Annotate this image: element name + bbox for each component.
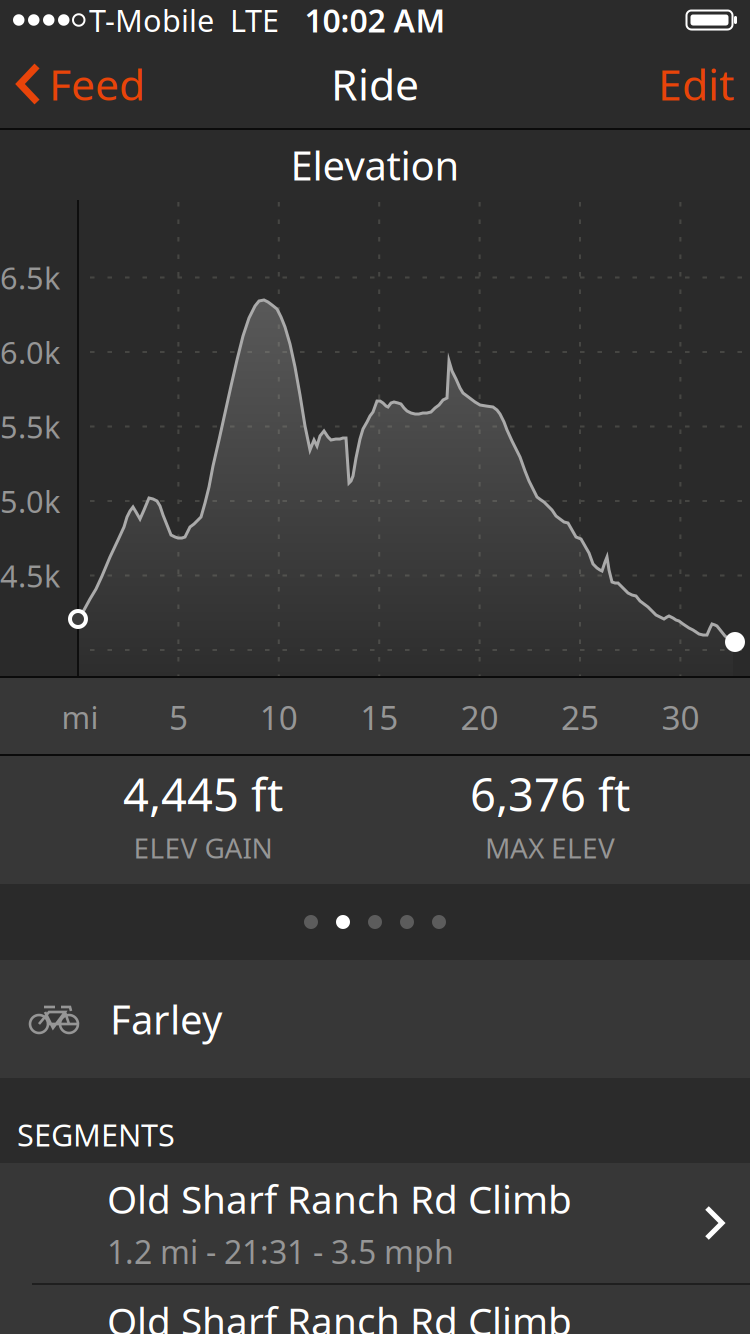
staticText: mi <box>61 697 98 737</box>
staticText: 5 <box>169 695 188 739</box>
button[interactable]: Old Sharf Ranch Rd Climb <box>0 1163 750 1283</box>
staticText: T-Mobile <box>89 0 214 40</box>
staticText: 6.5k <box>0 257 60 298</box>
staticText: Old Sharf Ranch Rd Climb <box>107 1173 572 1224</box>
staticText: 5.0k <box>0 481 60 521</box>
staticText: 1.2 mi - 21:31 - 3.5 mph <box>107 1230 454 1273</box>
staticText: 6,376 ft <box>470 764 630 824</box>
staticText: Ride <box>331 56 419 112</box>
staticText: 4.5k <box>0 555 60 596</box>
staticText: 5.5k <box>0 406 60 447</box>
staticText: Feed <box>49 56 145 112</box>
staticText: LTE <box>230 0 279 40</box>
button[interactable]: Feed <box>0 40 159 128</box>
staticText: 25 <box>561 695 599 739</box>
staticText: Old Sharf Ranch Rd Climb <box>107 1295 572 1334</box>
staticText: 20 <box>461 695 499 739</box>
staticText: 10 <box>260 695 298 739</box>
button[interactable]: Farley <box>0 960 750 1078</box>
staticText: 15 <box>360 695 398 739</box>
staticText: 4,445 ft <box>123 764 283 824</box>
button[interactable]: Edit <box>640 40 750 128</box>
staticText: Elevation <box>290 138 459 191</box>
button[interactable]: Old Sharf Ranch Rd Climb <box>0 1285 750 1334</box>
staticText: 6.0k <box>0 332 60 372</box>
staticText: 30 <box>661 695 699 739</box>
staticText: 10:02 AM <box>304 0 445 41</box>
staticText: Farley <box>110 992 222 1045</box>
staticText: MAX ELEV <box>485 829 615 866</box>
staticText: SEGMENTS <box>17 1114 175 1155</box>
staticText: Edit <box>658 56 734 112</box>
staticText: ELEV GAIN <box>133 829 272 866</box>
